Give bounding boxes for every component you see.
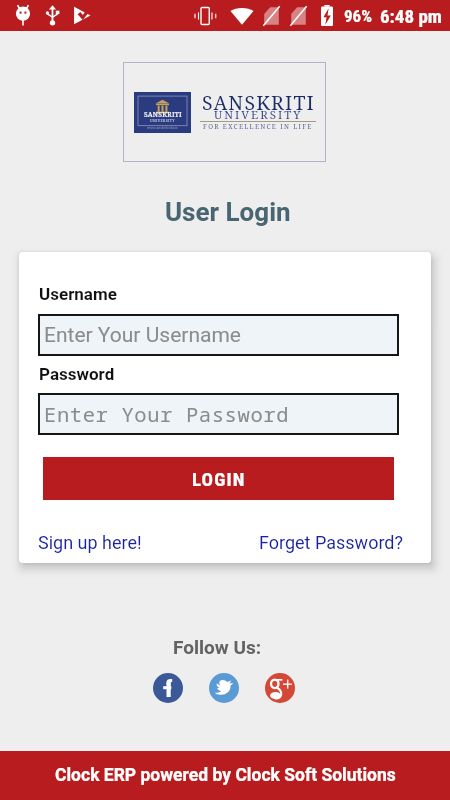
- staticText: UNIVERSITY: [150, 118, 175, 123]
- staticText: Username: [39, 284, 117, 304]
- button[interactable]: Enter Your Password: [38, 393, 399, 435]
- staticText: Clock ERP powered by Clock Soft Solution…: [55, 765, 396, 786]
- button[interactable]: Sign up here!: [38, 532, 142, 553]
- staticText: 96%: [344, 6, 373, 26]
- staticText: SANSKRITI: [202, 89, 315, 116]
- staticText: Follow Us:: [173, 636, 262, 658]
- staticText: SANSKRITI: [144, 110, 182, 119]
- button[interactable]: Google Plus: [265, 673, 295, 703]
- staticText: Enter Your Username: [44, 323, 241, 348]
- staticText: www.sanskriti.edu.in: [147, 126, 178, 130]
- staticText: User Login: [165, 197, 291, 227]
- staticText: Password: [39, 364, 115, 384]
- staticText: Enter Your Password: [44, 400, 290, 428]
- staticText: 6:48 pm: [380, 5, 442, 27]
- staticText: FOR EXCELLENCE IN LIFE: [203, 122, 313, 131]
- button[interactable]: LOGIN: [43, 457, 394, 500]
- staticText: Forget Password?: [259, 532, 403, 553]
- staticText: Sign up here!: [38, 532, 142, 553]
- button[interactable]: Twitter: [209, 673, 239, 703]
- staticText: LOGIN: [192, 468, 246, 490]
- button[interactable]: Enter Your Username: [38, 314, 399, 356]
- staticText: UNIVERSITY: [214, 107, 303, 123]
- button[interactable]: Forget Password?: [259, 532, 403, 553]
- button[interactable]: Facebook: [153, 673, 183, 703]
